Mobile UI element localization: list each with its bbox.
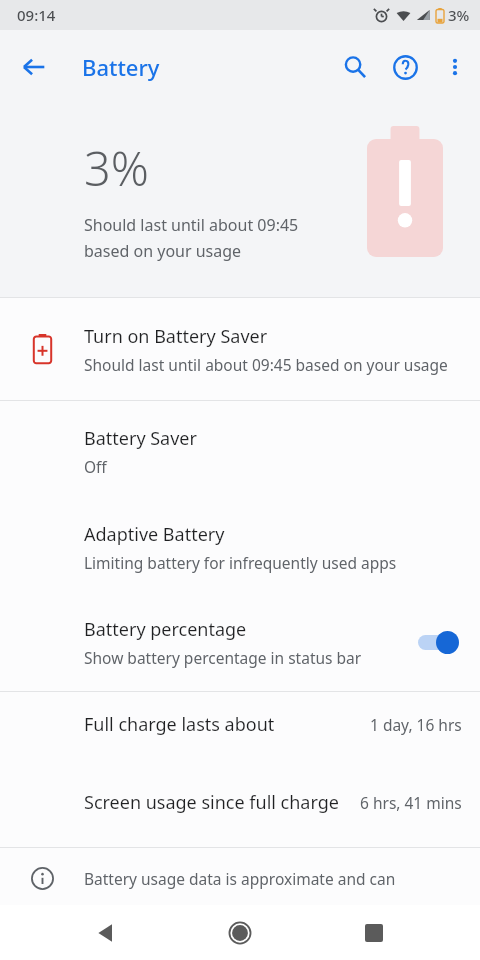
- button[interactable]: Battery Saver: [0, 401, 480, 501]
- staticText: 3%: [448, 5, 470, 25]
- button[interactable]: Home: [212, 905, 268, 960]
- staticText: 6 hrs, 41 mins: [360, 792, 462, 813]
- staticText: Screen usage since full charge: [84, 790, 339, 815]
- staticText: Battery: [82, 52, 160, 82]
- staticText: Battery percentage: [84, 617, 247, 642]
- staticText: Off: [84, 456, 107, 477]
- button[interactable]: Full charge lasts about: [0, 692, 480, 757]
- button[interactable]: Battery percentage toggle: [416, 627, 462, 657]
- staticText: Show battery percentage in status bar: [84, 647, 362, 668]
- button[interactable]: Screen usage since full charge: [0, 757, 480, 847]
- button[interactable]: Turn on Battery Saver: [0, 298, 480, 400]
- staticText: Full charge lasts about: [84, 712, 275, 737]
- button[interactable]: Recent apps: [346, 905, 402, 960]
- staticText: Should last until about 09:45 based on y…: [84, 354, 448, 375]
- button[interactable]: Battery percentage: [0, 593, 480, 691]
- button[interactable]: Search: [330, 42, 380, 92]
- staticText: Turn on Battery Saver: [84, 324, 268, 349]
- button[interactable]: More options: [430, 42, 480, 92]
- staticText: 1 day, 16 hrs: [370, 714, 462, 735]
- staticText: 09:14: [17, 5, 56, 25]
- staticText: 3%: [84, 136, 150, 200]
- staticText: Battery usage data is approximate and ca…: [84, 868, 396, 889]
- button[interactable]: Back: [8, 41, 60, 93]
- staticText: based on your usage: [84, 240, 242, 262]
- staticText: Battery Saver: [84, 426, 197, 451]
- button[interactable]: Adaptive Battery: [0, 501, 480, 593]
- staticText: Adaptive Battery: [84, 522, 225, 547]
- staticText: Limiting battery for infrequently used a…: [84, 552, 397, 573]
- button[interactable]: Back: [78, 905, 134, 960]
- button[interactable]: Help: [380, 42, 430, 92]
- staticText: Should last until about 09:45: [84, 214, 299, 236]
